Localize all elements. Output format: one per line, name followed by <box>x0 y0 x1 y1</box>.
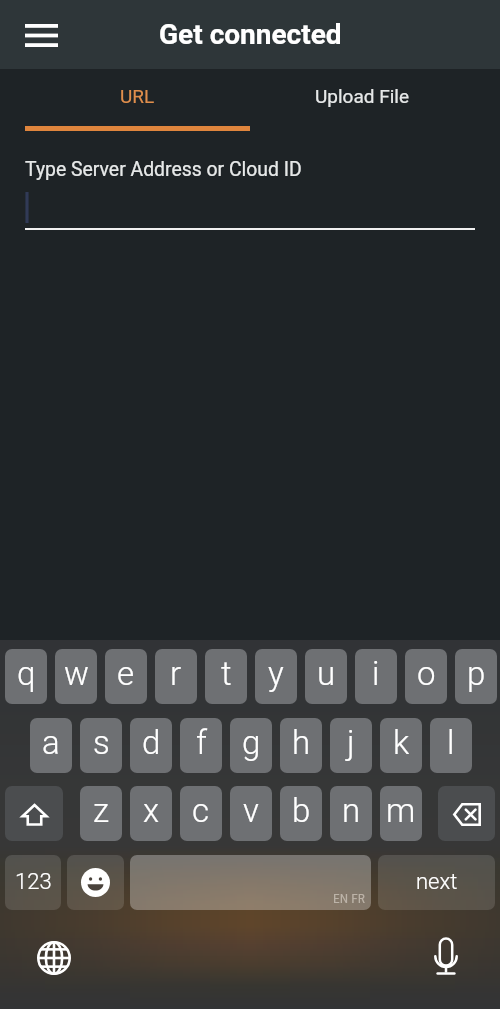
staticText: x <box>143 791 160 830</box>
button[interactable]: Voice input <box>422 932 470 980</box>
staticText: u <box>317 654 336 693</box>
button[interactable]: y <box>255 649 297 704</box>
button[interactable]: x <box>130 786 172 841</box>
staticText: d <box>142 723 161 762</box>
button[interactable]: b <box>280 786 322 841</box>
button[interactable]: q <box>5 649 47 704</box>
staticText: b <box>292 791 311 830</box>
button[interactable]: r <box>155 649 197 704</box>
staticText: q <box>17 654 36 693</box>
staticText: t <box>221 654 232 693</box>
staticText: URL <box>120 85 155 107</box>
staticText: n <box>342 791 361 830</box>
button[interactable]: Backspace <box>438 786 495 841</box>
button[interactable]: s <box>80 718 122 773</box>
button[interactable]: n <box>330 786 372 841</box>
button[interactable]: c <box>180 786 222 841</box>
staticText: i <box>372 654 380 693</box>
staticText: o <box>417 654 436 693</box>
staticText: 123 <box>15 869 52 895</box>
staticText: p <box>467 654 486 693</box>
button[interactable]: w <box>55 649 97 704</box>
staticText: g <box>242 723 261 762</box>
button[interactable]: f <box>180 718 222 773</box>
staticText: EN FR <box>333 890 365 906</box>
button[interactable]: u <box>305 649 347 704</box>
button[interactable]: Change language <box>30 934 78 982</box>
staticText: Get connected <box>159 18 342 51</box>
button[interactable]: g <box>230 718 272 773</box>
button[interactable]: t <box>205 649 247 704</box>
button[interactable]: l <box>430 718 472 773</box>
button[interactable]: next <box>378 855 495 910</box>
button[interactable]: 123 <box>5 855 61 910</box>
button[interactable]: i <box>355 649 397 704</box>
staticText: f <box>196 723 207 762</box>
staticText: c <box>192 791 210 830</box>
staticText: y <box>268 654 284 693</box>
button[interactable]: Shift <box>5 786 63 841</box>
button[interactable]: e <box>105 649 147 704</box>
staticText: l <box>447 723 455 762</box>
button[interactable]: Space <box>130 855 371 910</box>
button[interactable]: v <box>230 786 272 841</box>
button[interactable]: z <box>80 786 122 841</box>
button[interactable]: o <box>405 649 447 704</box>
staticText: m <box>386 791 416 830</box>
staticText: Type Server Address or Cloud ID <box>25 158 302 181</box>
button[interactable]: h <box>280 718 322 773</box>
button[interactable]: d <box>130 718 172 773</box>
button[interactable]: Upload File <box>250 69 475 126</box>
staticText: j <box>347 723 355 762</box>
staticText: k <box>393 723 410 762</box>
button[interactable]: Menu <box>13 7 69 63</box>
staticText: z <box>93 791 110 830</box>
staticText: s <box>93 723 110 762</box>
staticText: e <box>117 654 135 693</box>
staticText: Upload File <box>315 85 410 107</box>
button[interactable]: a <box>30 718 72 773</box>
button[interactable]: j <box>330 718 372 773</box>
button[interactable]: URL <box>25 69 250 126</box>
staticText: v <box>243 791 259 830</box>
staticText: next <box>416 869 458 895</box>
button[interactable]: p <box>455 649 497 704</box>
staticText: r <box>170 654 182 693</box>
button[interactable]: Emoji <box>67 855 124 910</box>
staticText: h <box>292 723 311 762</box>
staticText: a <box>42 723 60 762</box>
button[interactable]: m <box>380 786 422 841</box>
staticText: w <box>64 654 89 693</box>
button[interactable]: k <box>380 718 422 773</box>
